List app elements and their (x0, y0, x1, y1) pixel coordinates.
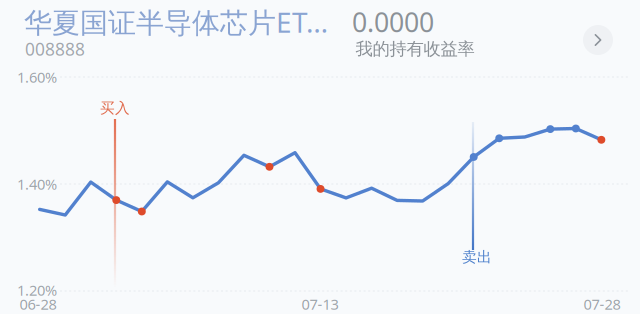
staticText: 1.20% (17, 280, 57, 300)
staticText: 华夏国证半导体芯片ET… (24, 3, 328, 41)
staticText: 0.0000 (352, 4, 434, 40)
button[interactable]: Details (583, 25, 613, 55)
staticText: 1.60% (17, 67, 57, 87)
staticText: 买入 (100, 99, 130, 117)
staticText: 1.40% (17, 174, 57, 194)
staticText: 07-28 (583, 294, 620, 314)
staticText: 卖出 (462, 248, 492, 266)
staticText: 我的持有收益率 (355, 38, 474, 60)
staticText: 06-28 (19, 294, 56, 314)
staticText: 07-13 (301, 294, 338, 314)
staticText: 008888 (25, 37, 85, 60)
